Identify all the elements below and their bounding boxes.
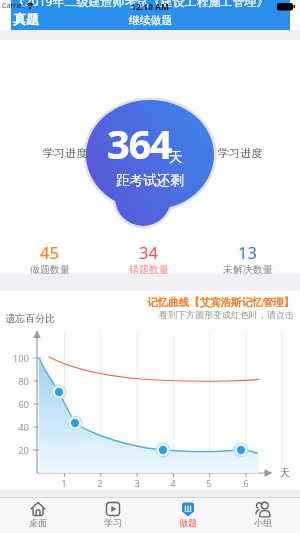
- staticText: 100: [7, 352, 29, 365]
- staticText: 学习进度: [43, 146, 87, 160]
- staticText: 4: [168, 477, 178, 490]
- staticText: 1: [59, 477, 69, 490]
- button[interactable]: 桌面: [0, 498, 75, 533]
- staticText: 80: [7, 375, 29, 388]
- staticText: Carrier: [2, 1, 25, 11]
- staticText: 34: [139, 241, 158, 263]
- staticText: 20: [7, 444, 29, 457]
- staticText: 真题: [13, 11, 39, 27]
- staticText: 看到下方圆形变成红色时，请点击: [100, 309, 294, 320]
- staticText: 做题数量: [30, 263, 70, 276]
- staticText: 小组: [254, 517, 272, 528]
- button[interactable]: 做题: [150, 498, 225, 533]
- button[interactable]: 继续做题: [11, 13, 290, 27]
- staticText: 5: [204, 477, 214, 490]
- staticText: 40: [7, 421, 29, 434]
- staticText: 3: [132, 477, 142, 490]
- staticText: 错题数量: [129, 263, 169, 276]
- staticText: 天: [280, 466, 290, 479]
- staticText: 学习: [104, 517, 122, 528]
- staticText: 做题: [179, 517, 197, 528]
- staticText: 遗忘百分比: [5, 312, 55, 325]
- staticText: 天: [169, 149, 183, 167]
- button[interactable]: 34: [99, 241, 198, 276]
- button[interactable]: 13: [198, 241, 297, 276]
- button[interactable]: 小组: [225, 498, 300, 533]
- staticText: 《2019年二级建造师考试《建设工程施工管理》: [13, 0, 269, 9]
- staticText: 距考试还剩: [75, 172, 225, 189]
- button[interactable]: 45: [0, 241, 99, 276]
- staticText: 6: [241, 477, 251, 490]
- staticText: 继续做题: [11, 13, 290, 27]
- staticText: 13: [238, 241, 257, 263]
- staticText: 学习进度: [218, 146, 262, 160]
- staticText: 未解决数量: [223, 263, 273, 276]
- button[interactable]: 《2019年二级建造师考试《建设工程施工管理》: [11, 0, 290, 30]
- staticText: 2: [95, 477, 105, 490]
- staticText: 12:10 AM: [120, 1, 180, 13]
- staticText: 45: [40, 241, 59, 263]
- staticText: 桌面: [29, 517, 47, 528]
- staticText: 364: [107, 116, 172, 170]
- button[interactable]: 学习: [75, 498, 150, 533]
- staticText: 60: [7, 398, 29, 411]
- staticText: 记忆曲线【艾宾浩斯记忆管理】: [100, 296, 294, 309]
